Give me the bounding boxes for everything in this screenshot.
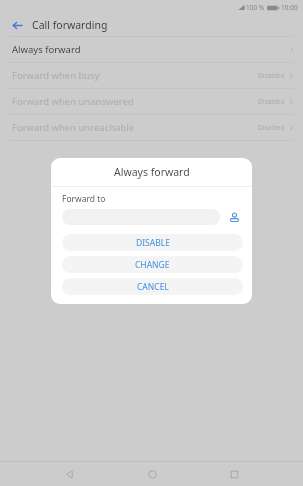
button[interactable]: Home (139, 462, 165, 486)
staticText: Disabled (258, 123, 285, 132)
staticText: 10:00 (281, 3, 298, 12)
staticText: Call forwarding (32, 18, 108, 32)
button[interactable]: DISABLE (62, 234, 243, 251)
button[interactable]: Pick contact (227, 210, 241, 224)
staticText: Forward to (62, 193, 106, 205)
button[interactable]: CANCEL (62, 278, 243, 295)
button[interactable]: Forward when unanswered (0, 89, 303, 114)
button[interactable]: Forward when busy (0, 63, 303, 88)
button[interactable]: Back (8, 16, 26, 34)
button[interactable]: Back (56, 462, 82, 486)
staticText: 100 % (246, 3, 265, 12)
staticText: Disabled (258, 71, 285, 80)
staticText: Always forward (12, 43, 81, 56)
staticText: Forward when busy (12, 69, 100, 82)
button[interactable]: Always forward (0, 37, 303, 62)
button[interactable]: Forward when unreachable (0, 115, 303, 140)
staticText: CANCEL (137, 281, 169, 293)
staticText: Forward when unreachable (12, 121, 135, 134)
button[interactable]: CHANGE (62, 256, 243, 273)
staticText: Forward when unanswered (12, 95, 134, 108)
staticText: CHANGE (135, 259, 170, 271)
staticText: DISABLE (136, 237, 170, 249)
staticText: Always forward (114, 165, 190, 179)
staticText: Disabled (258, 97, 285, 106)
button[interactable]: Recents (221, 462, 247, 486)
